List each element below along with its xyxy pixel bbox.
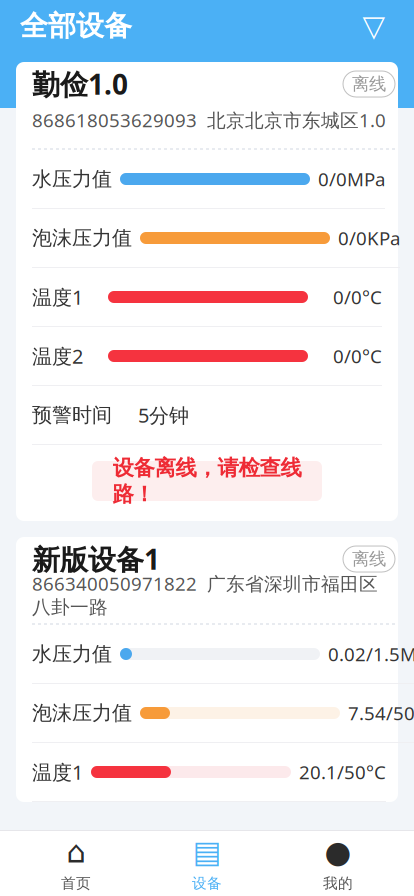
button[interactable]: ⌂ <box>21 836 131 890</box>
staticText: 新版设备1 <box>32 540 160 578</box>
button[interactable]: 离线 <box>343 546 395 572</box>
staticText: 水压力值 <box>32 167 112 191</box>
staticText: 勤俭1.0 <box>32 65 128 103</box>
staticText: 预警时间 <box>32 403 112 427</box>
staticText: 0/0°C <box>333 285 382 309</box>
staticText: 5分钟 <box>138 402 189 428</box>
staticText: 设备 <box>192 874 222 892</box>
staticText: 868618053629093 北京北京市东城区1.0 <box>32 108 386 132</box>
staticText: 设备离线，请检查线路！ <box>112 455 301 507</box>
staticText: ⌂ <box>66 835 85 869</box>
staticText: 温度2 <box>32 343 83 369</box>
staticText: 泡沫压力值 <box>32 701 132 725</box>
staticText: 866340050971822 广东省深圳市福田区八卦一路 <box>32 571 378 619</box>
staticText: 离线 <box>352 548 386 570</box>
staticText: 0/0KPa <box>338 226 400 250</box>
staticText: 温度1 <box>32 759 83 785</box>
button[interactable]: ▤ <box>152 836 262 890</box>
button[interactable]: 勤俭1.0 <box>16 62 398 521</box>
staticText: 20.1/50°C <box>299 760 386 784</box>
staticText: 全部设备 <box>20 9 132 43</box>
staticText: ▽ <box>362 9 385 43</box>
staticText: 我的 <box>323 874 353 892</box>
button[interactable]: 筛选 <box>354 6 394 46</box>
staticText: ● <box>324 835 351 869</box>
staticText: 0.02/1.5MPa <box>328 642 414 666</box>
staticText: ▤ <box>192 835 221 869</box>
staticText: 泡沫压力值 <box>32 226 132 250</box>
button[interactable]: 离线 <box>343 71 395 97</box>
staticText: 7.54/50KPa <box>348 701 414 725</box>
button[interactable]: ● <box>283 836 393 890</box>
staticText: 首页 <box>61 874 91 892</box>
button[interactable]: 新版设备1 <box>16 537 398 802</box>
staticText: 0/0°C <box>333 344 382 368</box>
staticText: 离线 <box>352 73 386 95</box>
staticText: 0/0MPa <box>318 167 385 191</box>
staticText: 水压力值 <box>32 642 112 666</box>
staticText: 温度1 <box>32 284 83 310</box>
